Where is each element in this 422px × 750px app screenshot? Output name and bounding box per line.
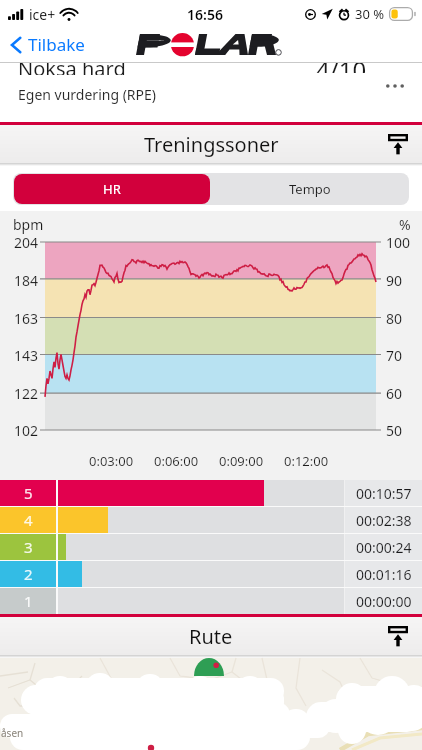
other: Collapse section <box>383 129 413 159</box>
staticText: 16:56 <box>187 5 223 24</box>
staticText: % <box>399 215 411 234</box>
staticText: 122 <box>14 384 39 403</box>
button[interactable]: Tilbake <box>8 29 87 60</box>
staticText: Rute <box>189 623 233 650</box>
button[interactable]: 4 <box>0 507 422 533</box>
staticText: 00:01:16 <box>356 565 412 584</box>
button[interactable]: 1 <box>0 588 422 614</box>
staticText: Treningssoner <box>144 131 279 158</box>
button[interactable]: HR <box>14 174 210 204</box>
staticText: 5 <box>24 483 33 503</box>
button[interactable]: 5 <box>0 480 422 506</box>
staticText: 100 <box>386 233 411 252</box>
staticText: 60 <box>386 384 403 403</box>
staticText: 0:03:00 <box>89 452 134 470</box>
staticText: Tempo <box>289 180 331 198</box>
other: Collapse section <box>383 621 413 651</box>
staticText: 90 <box>386 271 403 290</box>
staticText: bpm <box>13 215 44 234</box>
button[interactable]: åsen <box>0 658 422 750</box>
button[interactable]: Tempo <box>211 173 409 205</box>
staticText: HR <box>103 180 121 198</box>
staticText: Egen vurdering (RPE) <box>18 85 157 104</box>
button[interactable]: 3 <box>0 534 422 560</box>
staticText: ice+ <box>29 5 56 24</box>
button[interactable]: More options <box>381 72 409 100</box>
staticText: 50 <box>386 421 403 440</box>
staticText: 143 <box>14 346 39 365</box>
staticText: 0:09:00 <box>219 452 264 470</box>
staticText: 4 <box>24 510 33 530</box>
staticText: 2 <box>24 564 33 584</box>
staticText: 184 <box>14 271 39 290</box>
button[interactable]: Treningssoner <box>0 125 422 163</box>
button[interactable]: Rute <box>0 617 422 655</box>
staticText: 00:00:00 <box>356 592 412 611</box>
staticText: 0:12:00 <box>284 452 329 470</box>
button[interactable]: 2 <box>0 561 422 587</box>
staticText: 4/10 <box>316 62 367 73</box>
staticText: 102 <box>14 421 39 440</box>
staticText: 00:00:24 <box>356 538 412 557</box>
staticText: 204 <box>14 233 39 252</box>
staticText: 1 <box>24 591 33 611</box>
staticText: Tilbake <box>28 33 85 56</box>
staticText: 0:06:00 <box>154 452 199 470</box>
staticText: Noksa hard <box>18 62 126 75</box>
staticText: 3 <box>24 537 33 557</box>
staticText: 80 <box>386 309 403 328</box>
staticText: 163 <box>14 309 39 328</box>
button[interactable] <box>0 62 422 122</box>
staticText: åsen <box>1 726 24 740</box>
staticText: 70 <box>386 346 403 365</box>
staticText: 30 % <box>355 5 385 23</box>
staticText: 00:02:38 <box>356 511 412 530</box>
staticText: 00:10:57 <box>356 484 412 503</box>
